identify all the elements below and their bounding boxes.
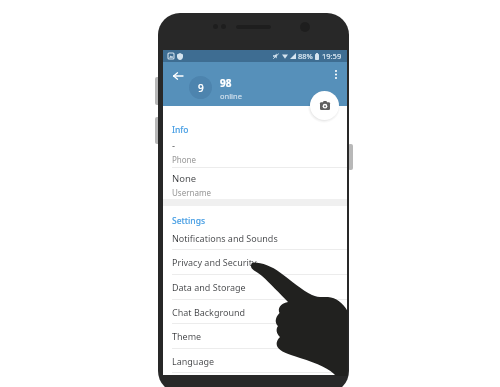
staticText: 88% — [298, 51, 313, 61]
staticText: online — [220, 91, 242, 101]
staticText: Settings — [172, 215, 206, 227]
staticText: Notifications and Sounds — [172, 232, 278, 244]
staticText: Language — [172, 355, 215, 367]
staticText: Username — [172, 187, 211, 198]
button[interactable]: Change photo — [310, 91, 339, 120]
staticText: 98 — [220, 76, 232, 90]
staticText: 9 — [198, 81, 204, 95]
staticText: Privacy and Security — [172, 256, 257, 268]
staticText: Data and Storage — [172, 281, 246, 293]
button[interactable]: Data and Storage — [163, 274, 347, 299]
button[interactable]: Language — [163, 348, 347, 373]
button[interactable]: None — [163, 172, 347, 198]
staticText: 19:59 — [322, 51, 342, 61]
button[interactable]: Privacy and Security — [163, 249, 347, 274]
button[interactable]: Back — [169, 67, 186, 84]
button[interactable]: - — [163, 139, 347, 165]
staticText: None — [172, 172, 197, 185]
staticText: Info — [172, 124, 189, 136]
staticText: Chat Background — [172, 306, 246, 318]
staticText: Theme — [172, 330, 202, 342]
button[interactable]: Theme — [163, 323, 347, 348]
button[interactable]: More options — [329, 67, 343, 81]
staticText: - — [172, 139, 176, 152]
button[interactable]: Chat Background — [163, 299, 347, 324]
staticText: Phone — [172, 154, 197, 165]
button[interactable]: Notifications and Sounds — [163, 225, 347, 250]
